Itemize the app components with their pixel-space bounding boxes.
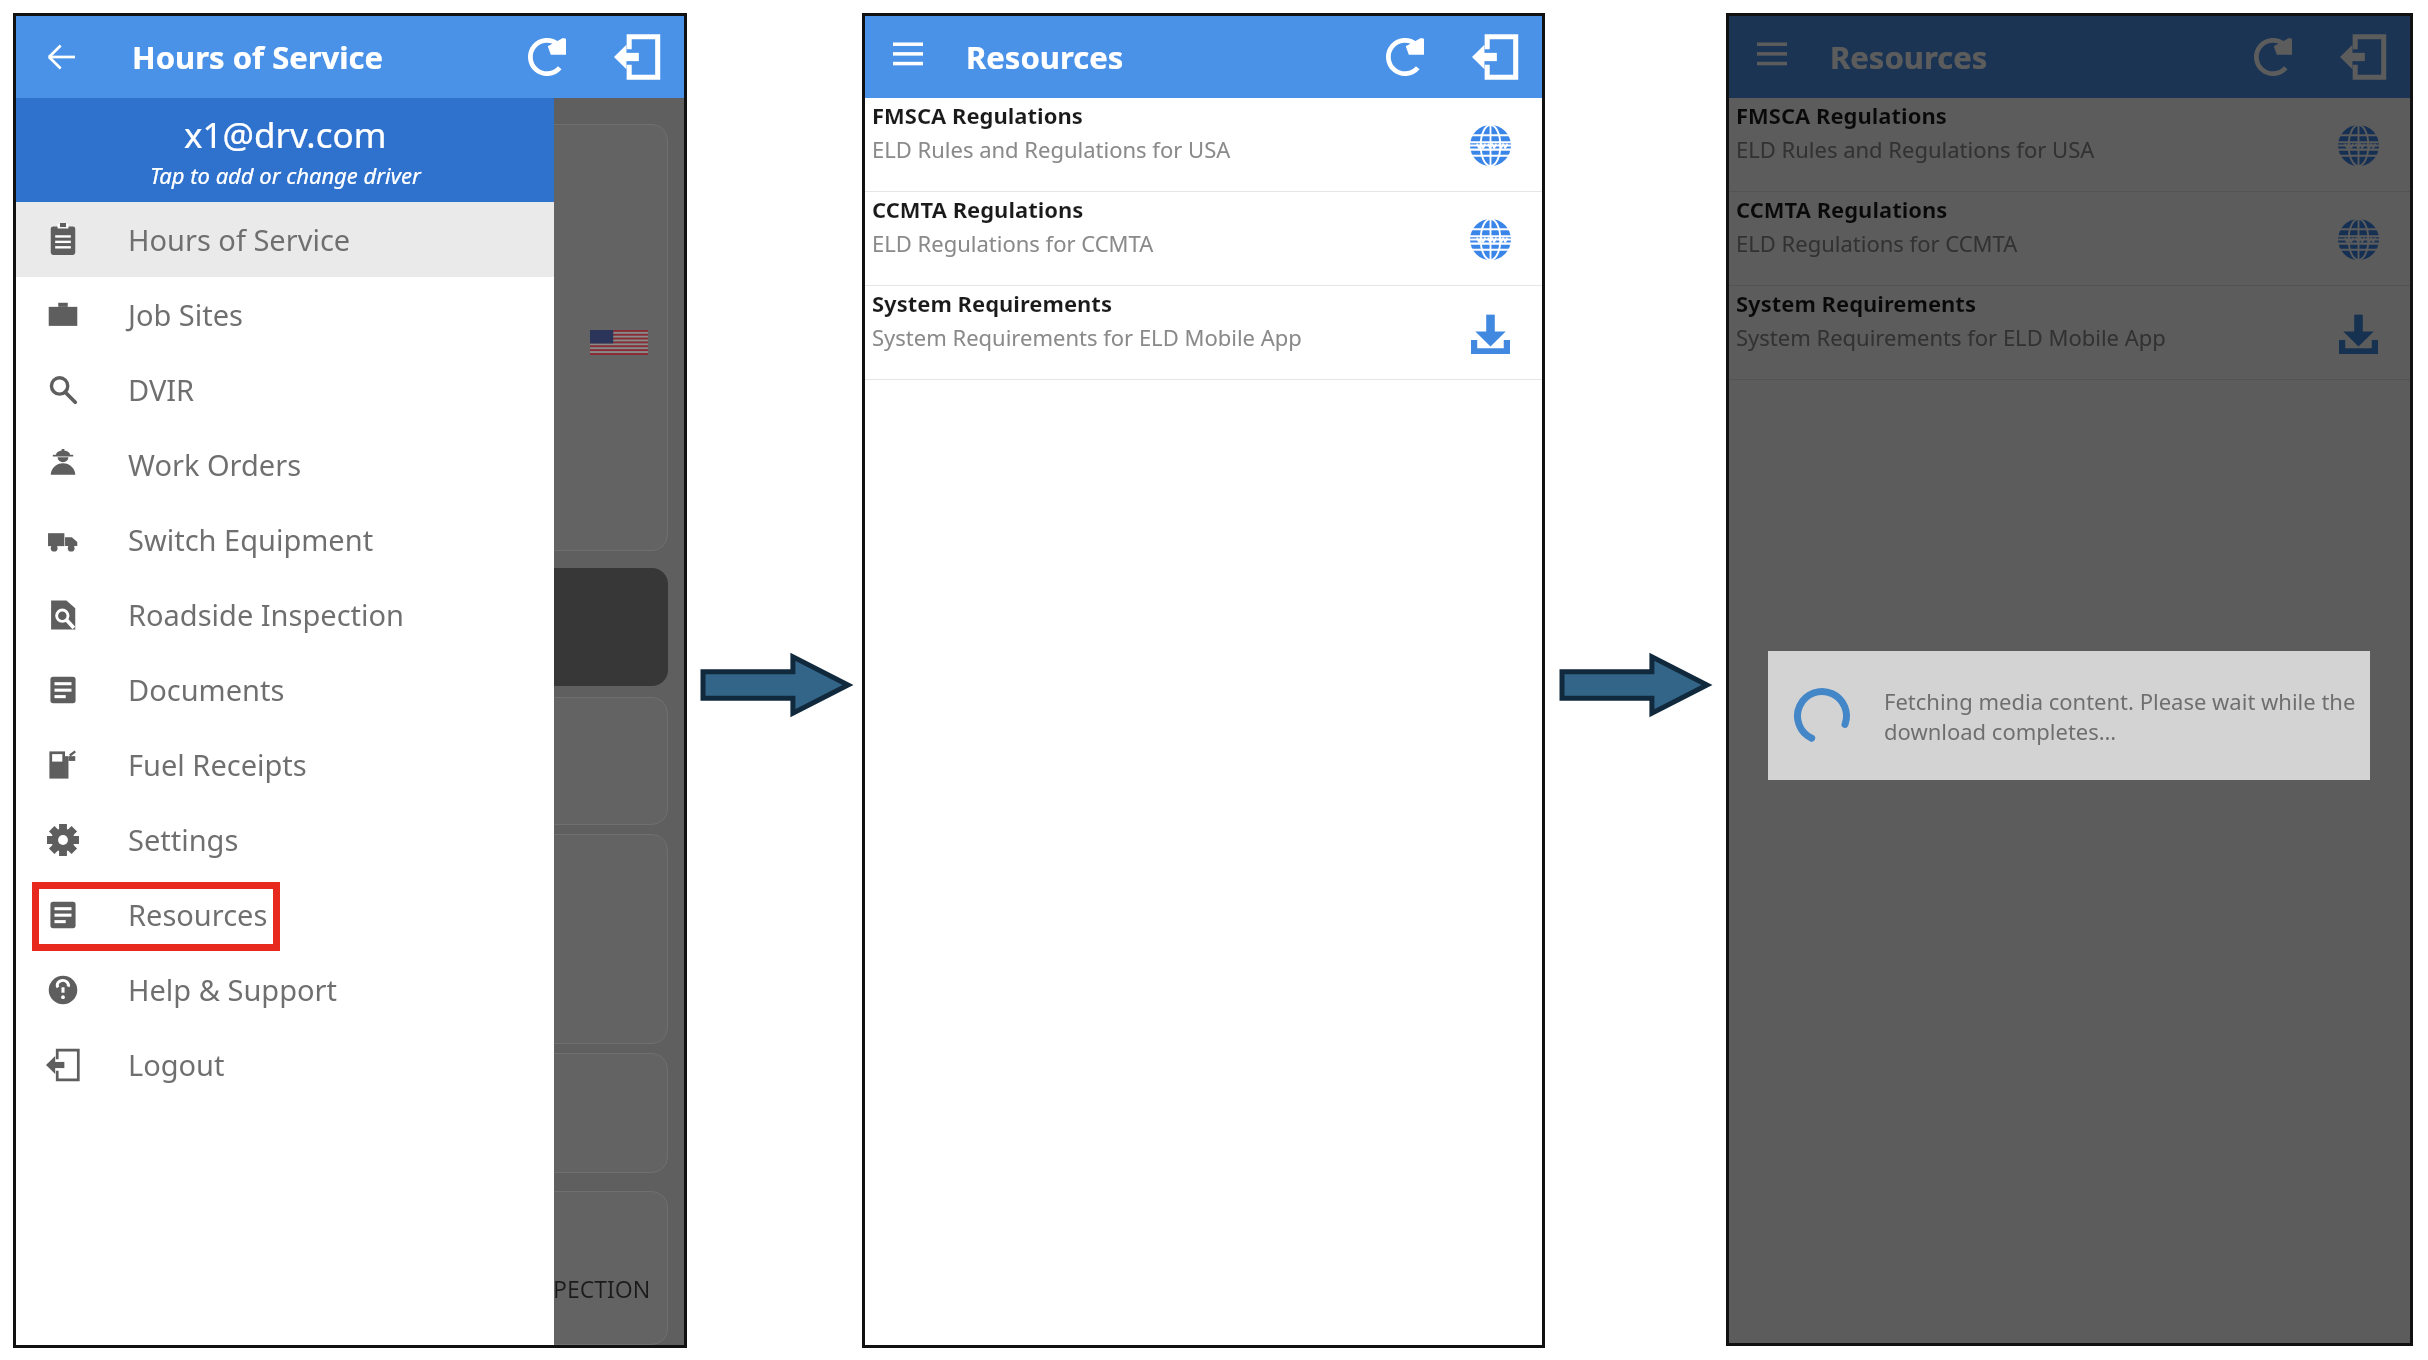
staticText: Work Orders	[128, 445, 302, 484]
staticText: Help & Support	[128, 970, 337, 1009]
button[interactable]: Open navigation menu	[1745, 26, 1799, 80]
staticText: Resources	[1830, 36, 1988, 78]
staticText: Roadside Inspection	[128, 595, 404, 634]
staticText: x1@drv.com	[184, 111, 387, 159]
button[interactable]: Switch Equipment	[16, 502, 554, 577]
button[interactable]: Roadside Inspection	[16, 577, 554, 652]
staticText: Settings	[128, 820, 239, 859]
button[interactable]: Job Sites	[16, 277, 554, 352]
staticText: Resources	[128, 895, 268, 934]
button[interactable]: Open navigation menu	[881, 26, 935, 80]
button[interactable]: Documents	[16, 652, 554, 727]
staticText: Fetching media content. Please wait whil…	[1884, 686, 2356, 746]
staticText: Job Sites	[128, 295, 243, 334]
staticText: Documents	[128, 670, 285, 709]
staticText: Hours of Service	[132, 36, 384, 78]
staticText: System Requirements	[872, 288, 1112, 318]
button[interactable]: System Requirements	[1729, 286, 2410, 380]
button[interactable]: Fuel Receipts	[16, 727, 554, 802]
staticText: System Requirements for ELD Mobile App	[1736, 322, 2166, 352]
button[interactable]: FMSCA Regulations	[865, 98, 1542, 192]
staticText: Hours of Service	[128, 220, 351, 259]
button[interactable]: FMSCA Regulations	[1729, 98, 2410, 192]
staticText: Logout	[128, 1045, 225, 1084]
button[interactable]: Refresh	[516, 26, 578, 88]
button[interactable]: x1@drv.com	[16, 98, 554, 202]
button[interactable]: Help & Support	[16, 952, 554, 1027]
button[interactable]: Work Orders	[16, 427, 554, 502]
staticText: Tap to add or change driver	[150, 160, 421, 190]
staticText: Fuel Receipts	[128, 745, 307, 784]
button[interactable]: CCMTA Regulations	[1729, 192, 2410, 286]
staticText: PECTION	[553, 1273, 651, 1304]
staticText: System Requirements	[1736, 288, 1976, 318]
staticText: CCMTA Regulations	[872, 194, 1084, 224]
staticText: ELD Regulations for CCMTA	[872, 228, 1154, 258]
button[interactable]: Logout	[16, 1027, 554, 1102]
button[interactable]: Resources	[16, 877, 554, 952]
button[interactable]: Hours of Service	[16, 202, 554, 277]
staticText: Resources	[966, 36, 1124, 78]
button[interactable]: DVIR	[16, 352, 554, 427]
staticText: Switch Equipment	[128, 520, 374, 559]
staticText: ELD Regulations for CCMTA	[1736, 228, 2018, 258]
button[interactable]: Logout	[1464, 26, 1526, 88]
staticText: ELD Rules and Regulations for USA	[872, 134, 1231, 164]
button[interactable]: Logout	[606, 26, 668, 88]
staticText: DVIR	[128, 370, 195, 409]
button[interactable]: Settings	[16, 802, 554, 877]
button[interactable]: Back	[34, 30, 88, 84]
button[interactable]: Refresh	[1374, 26, 1436, 88]
staticText: FMSCA Regulations	[872, 100, 1083, 130]
staticText: System Requirements for ELD Mobile App	[872, 322, 1302, 352]
staticText: FMSCA Regulations	[1736, 100, 1947, 130]
button[interactable]: Refresh	[2242, 26, 2304, 88]
button[interactable]: System Requirements	[865, 286, 1542, 380]
staticText: CCMTA Regulations	[1736, 194, 1948, 224]
staticText: ELD Rules and Regulations for USA	[1736, 134, 2095, 164]
button[interactable]: CCMTA Regulations	[865, 192, 1542, 286]
button[interactable]: Logout	[2332, 26, 2394, 88]
